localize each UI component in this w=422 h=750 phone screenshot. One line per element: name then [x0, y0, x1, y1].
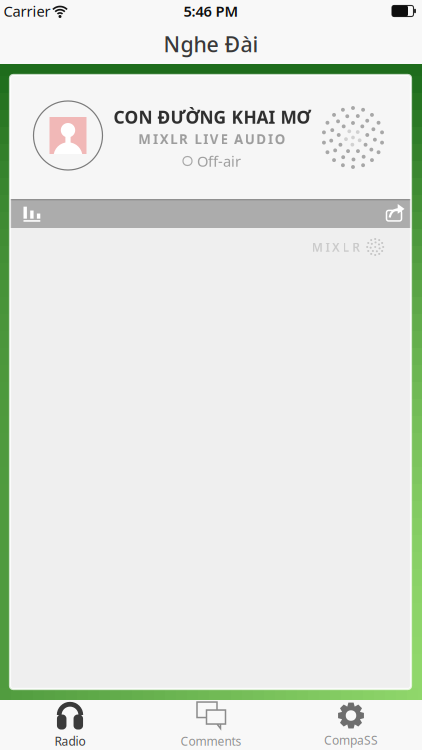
staticText: U	[245, 130, 255, 148]
staticText: I	[325, 239, 329, 255]
staticText: 5:46 PM	[183, 1, 238, 21]
staticText: M	[138, 130, 151, 148]
staticText: L	[170, 130, 177, 148]
staticText: Off-air	[197, 151, 241, 171]
staticText: O	[275, 130, 286, 148]
staticText: CompaSS	[324, 732, 378, 748]
button[interactable]: Comments	[156, 701, 266, 749]
staticText: I	[153, 130, 158, 148]
staticText: Radio	[54, 733, 85, 749]
button[interactable]	[23, 204, 40, 222]
staticText: R	[179, 130, 188, 148]
staticText: D	[256, 130, 266, 148]
staticText: X	[332, 239, 340, 255]
staticText: X	[160, 130, 169, 148]
staticText: I	[268, 130, 273, 148]
staticText: M	[312, 239, 323, 255]
staticText: V	[210, 130, 219, 148]
staticText: CON ĐƯỜNG KHAI MƠ	[113, 105, 310, 128]
button[interactable]: CompaSS	[296, 701, 406, 749]
staticText: Nghe Đài	[163, 30, 258, 58]
staticText: L	[343, 239, 350, 255]
button[interactable]	[386, 204, 404, 221]
staticText: A	[234, 130, 243, 148]
button[interactable]: Radio	[15, 701, 125, 749]
staticText: Comments	[180, 733, 241, 749]
staticText: L	[194, 130, 201, 148]
staticText: Carrier	[3, 1, 50, 21]
staticText: R	[352, 239, 360, 255]
staticText: I	[203, 130, 208, 148]
button[interactable]: M	[312, 238, 384, 256]
staticText: E	[221, 130, 228, 148]
